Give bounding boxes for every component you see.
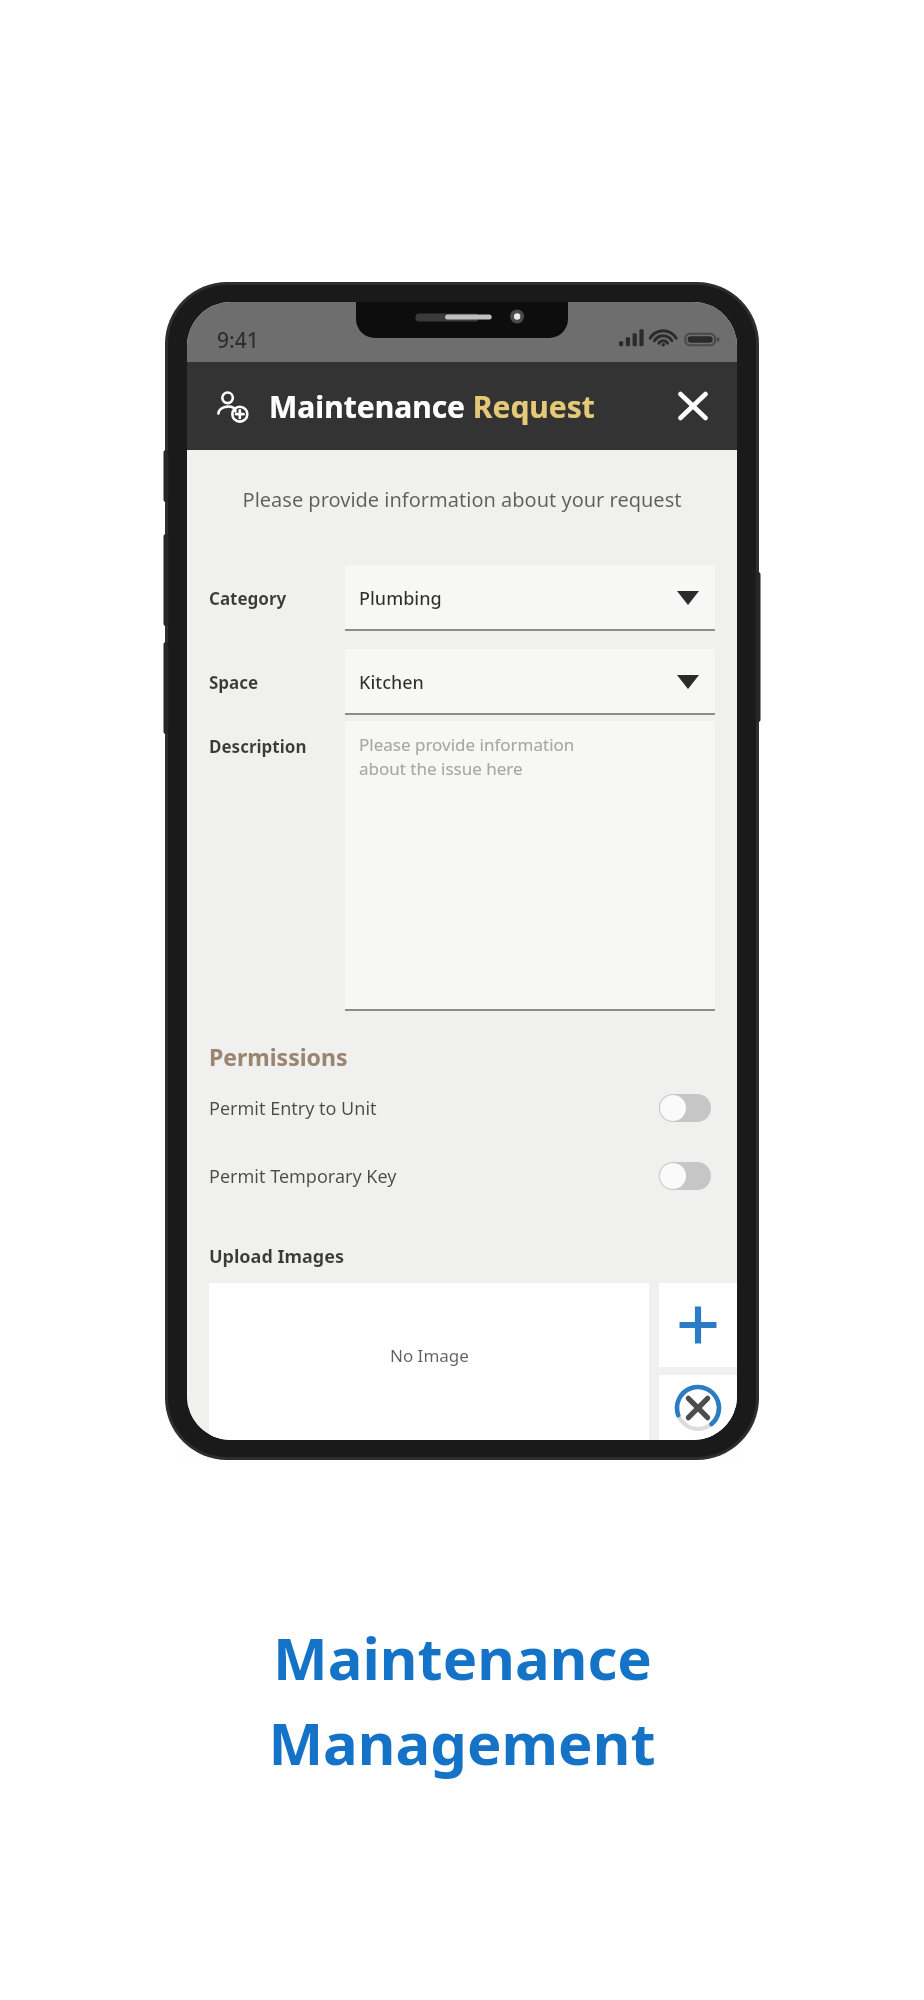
button[interactable]: Permit Temporary Key [187, 1156, 737, 1196]
staticText: Please provide information about your re… [187, 486, 737, 513]
button[interactable]: Add image [659, 1283, 737, 1367]
button[interactable]: Plumbing [345, 565, 715, 631]
staticText: 9:41 [217, 326, 259, 355]
staticText: Space [209, 671, 345, 694]
staticText: Permit Entry to Unit [209, 1096, 377, 1121]
button[interactable]: No Image [209, 1283, 649, 1440]
staticText: Permissions [209, 1041, 348, 1072]
staticText: Upload Images [209, 1244, 344, 1269]
staticText: Please provide information about the iss… [359, 733, 575, 780]
staticText: Kitchen [359, 670, 424, 695]
staticText: Plumbing [359, 586, 442, 611]
staticText: Permit Temporary Key [209, 1164, 397, 1189]
button[interactable]: Cancel upload [659, 1375, 737, 1440]
staticText: No Image [390, 1344, 469, 1367]
button[interactable]: Close [669, 382, 717, 430]
staticText: Description [209, 735, 345, 758]
button[interactable]: Permit Entry to Unit [187, 1088, 737, 1128]
button[interactable]: Kitchen [345, 649, 715, 715]
staticText: Management [268, 1703, 656, 1782]
staticText: Maintenance [273, 1618, 652, 1697]
staticText: Category [209, 587, 345, 610]
staticText: Maintenance Request [269, 386, 595, 427]
button[interactable]: Please provide information about the iss… [345, 721, 715, 1011]
button[interactable]: Add requester [209, 383, 255, 429]
